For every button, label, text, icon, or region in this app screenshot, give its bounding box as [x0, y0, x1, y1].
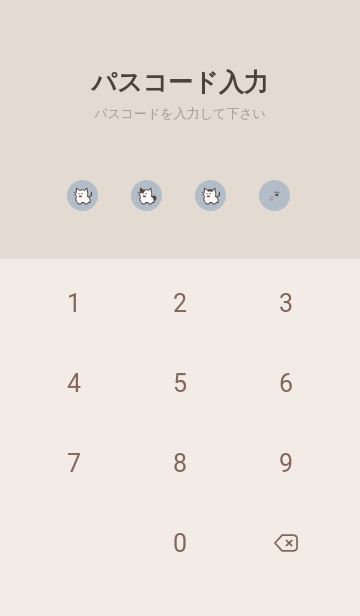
staticText: 5 — [173, 369, 188, 398]
staticText: パスコードを入力して下さい — [94, 105, 266, 121]
staticText: 4 — [67, 369, 82, 398]
button[interactable]: 3 — [240, 263, 332, 343]
staticText: 1 — [67, 289, 82, 318]
staticText: 7 — [67, 449, 82, 478]
staticText: パスコード入力 — [91, 67, 269, 98]
button[interactable]: 8 — [134, 423, 226, 503]
staticText: 8 — [173, 449, 188, 478]
staticText: 0 — [173, 529, 188, 558]
button[interactable]: 5 — [134, 343, 226, 423]
button[interactable]: Backspace — [240, 503, 332, 583]
staticText: 6 — [279, 369, 294, 398]
button[interactable]: 0 — [134, 503, 226, 583]
button[interactable]: 9 — [240, 423, 332, 503]
button[interactable]: 7 — [28, 423, 120, 503]
button[interactable]: 2 — [134, 263, 226, 343]
button[interactable]: 6 — [240, 343, 332, 423]
button[interactable]: 1 — [28, 263, 120, 343]
staticText: 3 — [279, 289, 294, 318]
staticText: 9 — [279, 449, 294, 478]
staticText: 2 — [173, 289, 188, 318]
button[interactable]: 4 — [28, 343, 120, 423]
other: Backspace — [274, 534, 298, 552]
